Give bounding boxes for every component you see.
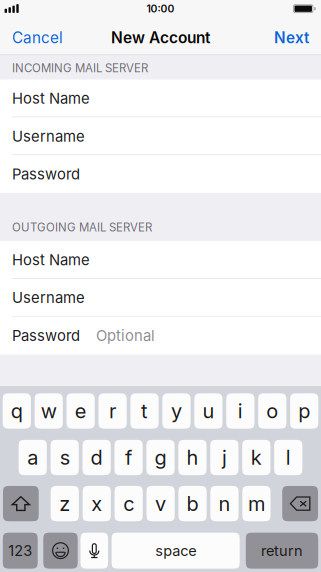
staticText: return xyxy=(261,542,303,559)
staticText: 10:00 xyxy=(146,2,174,15)
staticText: t xyxy=(141,399,148,423)
button[interactable]: t xyxy=(130,393,159,429)
button[interactable]: Cancel xyxy=(0,20,73,55)
button[interactable]: k xyxy=(242,440,270,475)
button[interactable]: g xyxy=(146,440,175,475)
staticText: INCOMING MAIL SERVER xyxy=(12,61,148,75)
button[interactable]: z xyxy=(51,486,79,521)
button[interactable]: 123 xyxy=(3,533,38,569)
button[interactable]: Host Name xyxy=(0,241,321,279)
staticText: Host Name xyxy=(12,251,90,269)
staticText: n xyxy=(218,491,230,516)
button[interactable]: Username xyxy=(0,117,321,155)
button[interactable]: p xyxy=(290,393,318,429)
button[interactable]: Password xyxy=(0,155,321,193)
button[interactable]: m xyxy=(242,486,270,521)
staticText: b xyxy=(186,491,198,516)
button[interactable]: Emoji xyxy=(43,533,78,569)
staticText: q xyxy=(11,399,23,423)
button[interactable]: Password xyxy=(0,317,321,354)
staticText: o xyxy=(266,399,278,423)
button[interactable]: u xyxy=(194,393,222,429)
button[interactable]: v xyxy=(146,486,175,521)
button[interactable]: o xyxy=(258,393,286,429)
staticText: Password xyxy=(12,165,80,183)
staticText: x xyxy=(91,491,102,516)
button[interactable]: c xyxy=(115,486,143,521)
button[interactable]: b xyxy=(178,486,207,521)
staticText: h xyxy=(186,445,198,470)
button[interactable]: j xyxy=(210,440,238,475)
staticText: i xyxy=(238,399,243,423)
button[interactable]: w xyxy=(35,393,63,429)
button[interactable]: x xyxy=(83,486,111,521)
button[interactable]: h xyxy=(178,440,206,475)
button[interactable]: Dictate xyxy=(80,533,108,569)
staticText: j xyxy=(222,445,227,470)
button[interactable]: r xyxy=(98,393,127,429)
button[interactable]: n xyxy=(210,486,239,521)
button[interactable]: l xyxy=(274,440,302,475)
staticText: e xyxy=(75,399,87,423)
button[interactable]: y xyxy=(162,393,191,429)
button[interactable]: f xyxy=(114,440,143,475)
button[interactable]: Delete xyxy=(282,486,318,521)
staticText: a xyxy=(27,445,38,470)
staticText: p xyxy=(298,399,310,423)
button[interactable]: return xyxy=(246,533,318,569)
staticText: New Account xyxy=(111,28,210,47)
staticText: space xyxy=(155,542,196,559)
button[interactable]: a xyxy=(19,440,47,475)
staticText: u xyxy=(202,399,214,423)
staticText: Username xyxy=(12,127,85,145)
button[interactable]: Host Name xyxy=(0,79,321,117)
button[interactable]: i xyxy=(226,393,254,429)
staticText: m xyxy=(248,491,265,516)
staticText: k xyxy=(251,445,262,470)
staticText: r xyxy=(109,399,116,423)
button[interactable]: s xyxy=(51,440,79,475)
button[interactable]: q xyxy=(3,393,31,429)
staticText: g xyxy=(154,445,166,470)
staticText: w xyxy=(41,399,57,423)
staticText: Host Name xyxy=(12,89,90,107)
staticText: z xyxy=(59,491,70,516)
staticText: c xyxy=(123,491,134,516)
staticText: f xyxy=(125,445,132,470)
staticText: 123 xyxy=(8,542,32,559)
staticText: Cancel xyxy=(12,28,63,47)
staticText: d xyxy=(91,445,103,470)
staticText: Next xyxy=(274,28,309,47)
button[interactable]: Shift xyxy=(3,486,39,521)
staticText: Password xyxy=(12,327,80,344)
staticText: y xyxy=(171,399,182,423)
staticText: l xyxy=(286,445,291,470)
button[interactable]: space xyxy=(112,533,240,569)
button[interactable]: d xyxy=(82,440,111,475)
button[interactable]: e xyxy=(67,393,95,429)
staticText: v xyxy=(155,491,166,516)
button[interactable]: Username xyxy=(0,279,321,317)
staticText: Optional xyxy=(96,327,155,344)
staticText: Username xyxy=(12,289,85,307)
button[interactable]: Next xyxy=(264,20,321,55)
staticText: OUTGOING MAIL SERVER xyxy=(12,220,152,234)
staticText: s xyxy=(60,445,70,470)
